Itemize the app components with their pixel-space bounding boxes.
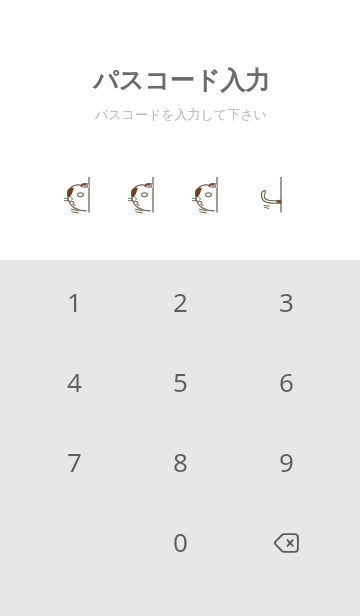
staticText: 2: [173, 284, 188, 319]
staticText: 4: [67, 364, 82, 399]
button[interactable]: 3: [233, 261, 339, 341]
button[interactable]: 6: [233, 341, 339, 421]
staticText: 7: [67, 444, 82, 479]
staticText: 0: [173, 524, 188, 559]
button[interactable]: 5: [127, 341, 233, 421]
button[interactable]: 2: [127, 261, 233, 341]
staticText: パスコードを入力して下さい: [95, 106, 267, 122]
button[interactable]: 1: [21, 261, 127, 341]
other: Delete: [273, 533, 299, 553]
button[interactable]: 9: [233, 421, 339, 501]
staticText: 1: [67, 284, 82, 319]
staticText: 3: [279, 284, 294, 319]
staticText: 5: [173, 364, 188, 399]
staticText: パスコード入力: [93, 65, 271, 96]
button[interactable]: 0: [127, 501, 233, 581]
staticText: 6: [279, 364, 294, 399]
staticText: 8: [173, 444, 188, 479]
button[interactable]: 7: [21, 421, 127, 501]
button[interactable]: Delete: [233, 501, 339, 581]
button[interactable]: 4: [21, 341, 127, 421]
button[interactable]: 8: [127, 421, 233, 501]
staticText: 9: [279, 444, 294, 479]
